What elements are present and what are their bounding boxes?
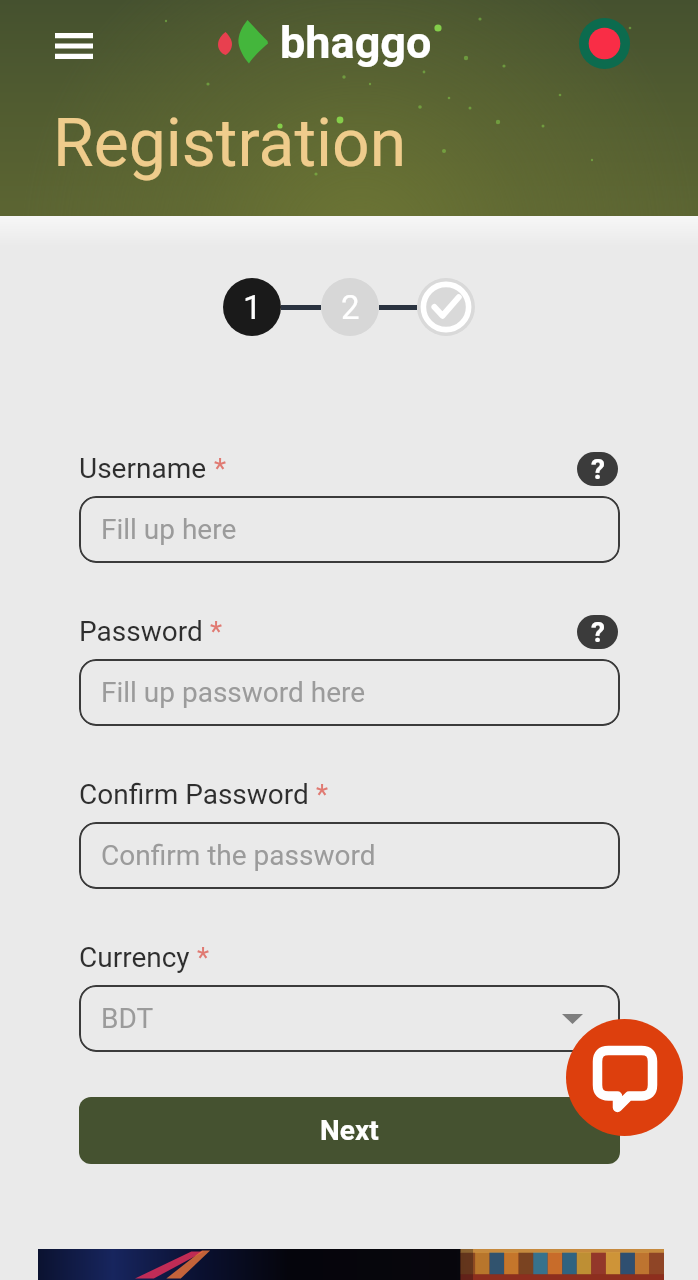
staticText: Registration [53,105,407,182]
button[interactable]: 1 [223,278,281,336]
button[interactable]: 2 [321,278,379,336]
staticText: bhaggo [280,16,432,69]
button[interactable]: Next [79,1097,620,1164]
staticText: 2 [341,288,360,327]
button[interactable]: Language [579,18,630,69]
button[interactable]: Help [577,615,618,649]
button[interactable]: Confirm the password [79,822,620,889]
staticText: * [309,778,329,811]
staticText: * [207,452,227,485]
staticText: Password [79,615,203,648]
staticText: ? [591,616,605,649]
button[interactable]: BDT [79,985,620,1052]
button[interactable]: Promotion banner [38,1249,664,1280]
button[interactable]: Fill up password here [79,659,620,726]
button[interactable]: Fill up here [79,496,620,563]
button[interactable]: Help [577,452,618,486]
staticText: ? [591,453,605,486]
staticText: Fill up here [101,513,237,546]
button[interactable]: Menu [45,22,103,70]
staticText: * [203,615,223,648]
button[interactable]: Live chat [566,1019,683,1136]
staticText: Next [320,1114,379,1147]
staticText: Confirm Password [79,778,309,811]
staticText: Confirm the password [101,839,376,872]
staticText: 1 [243,288,262,327]
staticText: Username [79,452,207,485]
staticText: * [190,941,210,974]
staticText: BDT [101,1002,154,1035]
staticText: Fill up password here [101,676,366,709]
staticText: Currency [79,941,190,974]
button[interactable] [417,278,475,336]
